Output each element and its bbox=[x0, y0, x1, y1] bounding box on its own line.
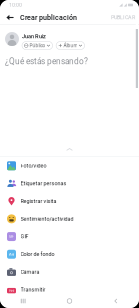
staticText: Registrar visita bbox=[20, 198, 56, 204]
button[interactable]: live bbox=[0, 281, 139, 298]
staticText: Cámara bbox=[20, 269, 39, 275]
button[interactable]: Aplicaciones recientes bbox=[0, 294, 46, 308]
button[interactable]: Cámara bbox=[0, 263, 139, 281]
staticText: 10:00 bbox=[9, 2, 22, 8]
button[interactable]: Sentimiento/actividad bbox=[0, 210, 139, 228]
button[interactable]: Registrar visita bbox=[0, 192, 139, 210]
staticText: Álbum bbox=[63, 43, 77, 48]
button[interactable]: Inicio bbox=[46, 294, 93, 308]
staticText: PUBLICAR bbox=[111, 14, 135, 21]
button[interactable]: GIF bbox=[0, 228, 139, 245]
staticText: Transmitir bbox=[20, 286, 45, 293]
button[interactable]: Etiquetar personas bbox=[0, 175, 139, 192]
button[interactable]: Foto/video bbox=[0, 157, 139, 175]
staticText: Juan Ruiz bbox=[22, 33, 46, 40]
staticText: GIF bbox=[20, 233, 28, 240]
staticText: Color de fondo bbox=[20, 251, 54, 257]
staticText: Etiquetar personas bbox=[20, 180, 66, 186]
staticText: ¿Qué estás pensando? bbox=[5, 57, 88, 66]
staticText: live bbox=[8, 289, 14, 293]
button[interactable]: Aa bbox=[0, 245, 139, 263]
staticText: Público bbox=[29, 43, 45, 48]
button[interactable]: Álbum bbox=[56, 42, 85, 50]
staticText: Foto/video bbox=[20, 163, 46, 169]
button[interactable]: Atrás bbox=[3, 10, 17, 25]
staticText: Crear publicación bbox=[20, 13, 77, 22]
button[interactable]: Atrás bbox=[93, 294, 139, 308]
staticText: GIF bbox=[9, 234, 14, 239]
button[interactable]: PUBLICAR bbox=[109, 10, 137, 25]
staticText: Aa bbox=[9, 252, 14, 257]
staticText: Sentimiento/actividad bbox=[20, 216, 73, 222]
button[interactable]: Público bbox=[22, 42, 53, 50]
